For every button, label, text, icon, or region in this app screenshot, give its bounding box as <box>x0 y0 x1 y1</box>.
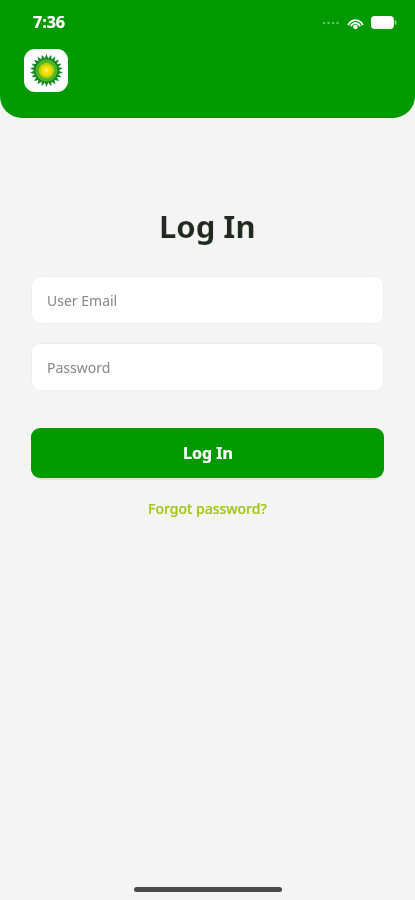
staticText: Log In <box>159 205 256 247</box>
staticText: Password <box>47 358 111 377</box>
staticText: Forgot password? <box>148 499 267 518</box>
button[interactable]: Password <box>31 343 384 391</box>
button[interactable]: Log In <box>31 428 384 478</box>
staticText: User Email <box>47 291 118 310</box>
button[interactable]: Forgot password? <box>138 495 277 522</box>
button[interactable]: User Email <box>31 276 384 324</box>
staticText: Log In <box>183 442 233 464</box>
staticText: 7:36 <box>33 11 65 33</box>
button[interactable]: bp logo <box>24 49 68 92</box>
